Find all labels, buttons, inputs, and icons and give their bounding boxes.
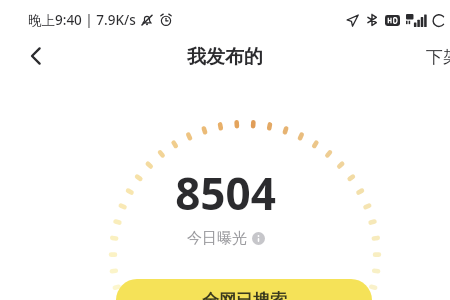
other: Info [252,232,265,245]
button[interactable]: Back [14,34,58,78]
staticText: 今日曝光 [187,229,247,248]
staticText: 全网已搜索 [202,290,287,300]
button[interactable]: 下架宝贝 [426,47,450,68]
staticText: 晚上9:40 | 7.9K/s [28,11,136,29]
staticText: 8504 [175,163,276,223]
button[interactable]: 全网已搜索 [116,279,372,300]
button[interactable]: 我发布的 [187,45,263,69]
button[interactable]: 今日曝光 [187,229,265,248]
